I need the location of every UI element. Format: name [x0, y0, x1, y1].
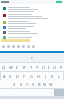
button[interactable]: M: [48, 80, 54, 88]
staticText: T: [30, 65, 33, 70]
button[interactable]: P: [58, 63, 64, 71]
button[interactable]: tool: [32, 45, 35, 48]
staticText: M: [49, 82, 53, 87]
button[interactable]: O: [52, 63, 58, 71]
staticText: G: [30, 74, 33, 79]
staticText: W: [9, 65, 13, 70]
button[interactable]: Y: [34, 63, 40, 71]
button[interactable]: U: [40, 63, 46, 71]
staticText: C: [26, 82, 29, 87]
button[interactable]: tool: [22, 45, 25, 48]
button[interactable]: R: [21, 63, 28, 71]
staticText: Q: [2, 65, 6, 70]
button[interactable]: tool: [27, 45, 30, 48]
staticText: L: [58, 74, 61, 79]
button[interactable]: .: [47, 89, 54, 96]
staticText: S: [9, 74, 12, 79]
staticText: B: [38, 82, 41, 87]
staticText: Y: [36, 65, 39, 70]
staticText: I: [48, 65, 50, 70]
staticText: H: [37, 74, 40, 79]
button[interactable]: D: [14, 72, 21, 80]
button[interactable]: Z: [11, 80, 18, 88]
staticText: X: [20, 82, 23, 87]
button[interactable]: S: [7, 72, 14, 80]
button[interactable]: H: [35, 72, 42, 80]
button[interactable]: F: [21, 72, 28, 80]
button[interactable]: tool: [2, 45, 5, 48]
button[interactable]: tool: [12, 45, 15, 48]
button[interactable]: X: [18, 80, 24, 88]
button[interactable]: Q: [0, 63, 7, 71]
button[interactable]: G: [28, 72, 35, 80]
staticText: N: [43, 82, 47, 87]
button[interactable]: tool: [17, 45, 20, 48]
button[interactable]: L: [56, 72, 63, 80]
button[interactable]: tool: [7, 45, 10, 48]
button[interactable]: A: [1, 72, 7, 80]
button[interactable]: W: [7, 63, 14, 71]
staticText: U: [42, 65, 45, 70]
staticText: J: [45, 74, 47, 79]
staticText: P: [60, 65, 63, 70]
staticText: D: [16, 74, 19, 79]
button[interactable]: C: [24, 80, 30, 88]
staticText: c: [31, 55, 33, 60]
button[interactable]: T: [28, 63, 34, 71]
button[interactable]: B: [36, 80, 42, 88]
button[interactable]: ,: [9, 89, 16, 96]
staticText: K: [51, 74, 54, 79]
button[interactable]: K: [49, 72, 56, 80]
staticText: V: [32, 82, 35, 87]
button[interactable]: E: [14, 63, 21, 71]
button[interactable]: I: [46, 63, 52, 71]
staticText: .: [50, 90, 52, 95]
staticText: ,: [12, 90, 14, 95]
staticText: Z: [13, 82, 16, 87]
staticText: R: [23, 65, 26, 70]
button[interactable]: N: [42, 80, 48, 88]
staticText: E: [16, 65, 19, 70]
staticText: O: [53, 65, 57, 70]
staticText: A: [3, 74, 6, 79]
button[interactable]: J: [42, 72, 49, 80]
staticText: F: [23, 74, 26, 79]
button[interactable]: V: [30, 80, 36, 88]
